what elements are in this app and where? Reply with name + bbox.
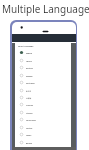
button[interactable]: Čeština xyxy=(16,124,72,131)
staticText: Select Language xyxy=(18,45,34,48)
button[interactable]: Português xyxy=(16,79,72,86)
button[interactable]: English xyxy=(16,49,72,56)
staticText: Italiano xyxy=(26,112,33,114)
staticText: Français xyxy=(26,104,33,106)
staticText: Nederlands xyxy=(26,119,36,121)
staticText: 日本語 xyxy=(26,97,32,99)
staticText: Multiple Language xyxy=(2,2,89,16)
button[interactable]: Italiano xyxy=(16,109,72,116)
staticText: Deutsch xyxy=(26,67,33,69)
staticText: Suomi xyxy=(26,134,32,136)
button[interactable]: Nederlands xyxy=(16,116,72,123)
button[interactable]: Bahasa xyxy=(16,139,72,146)
staticText: Čeština xyxy=(26,127,33,129)
staticText: Bahasa xyxy=(26,142,33,144)
staticText: Türkçe xyxy=(26,60,32,62)
button[interactable]: 日本語 xyxy=(16,94,72,101)
button[interactable]: Türkçe xyxy=(16,57,72,64)
button[interactable]: Español xyxy=(16,72,72,79)
staticText: 한국어 xyxy=(26,90,32,92)
button[interactable]: Suomi xyxy=(16,131,72,138)
staticText: Português xyxy=(26,82,35,84)
staticText: Español xyxy=(26,75,33,77)
button[interactable]: 한국어 xyxy=(16,87,72,94)
button[interactable]: Deutsch xyxy=(16,64,72,71)
button[interactable]: Français xyxy=(16,101,72,108)
staticText: English xyxy=(26,52,33,54)
